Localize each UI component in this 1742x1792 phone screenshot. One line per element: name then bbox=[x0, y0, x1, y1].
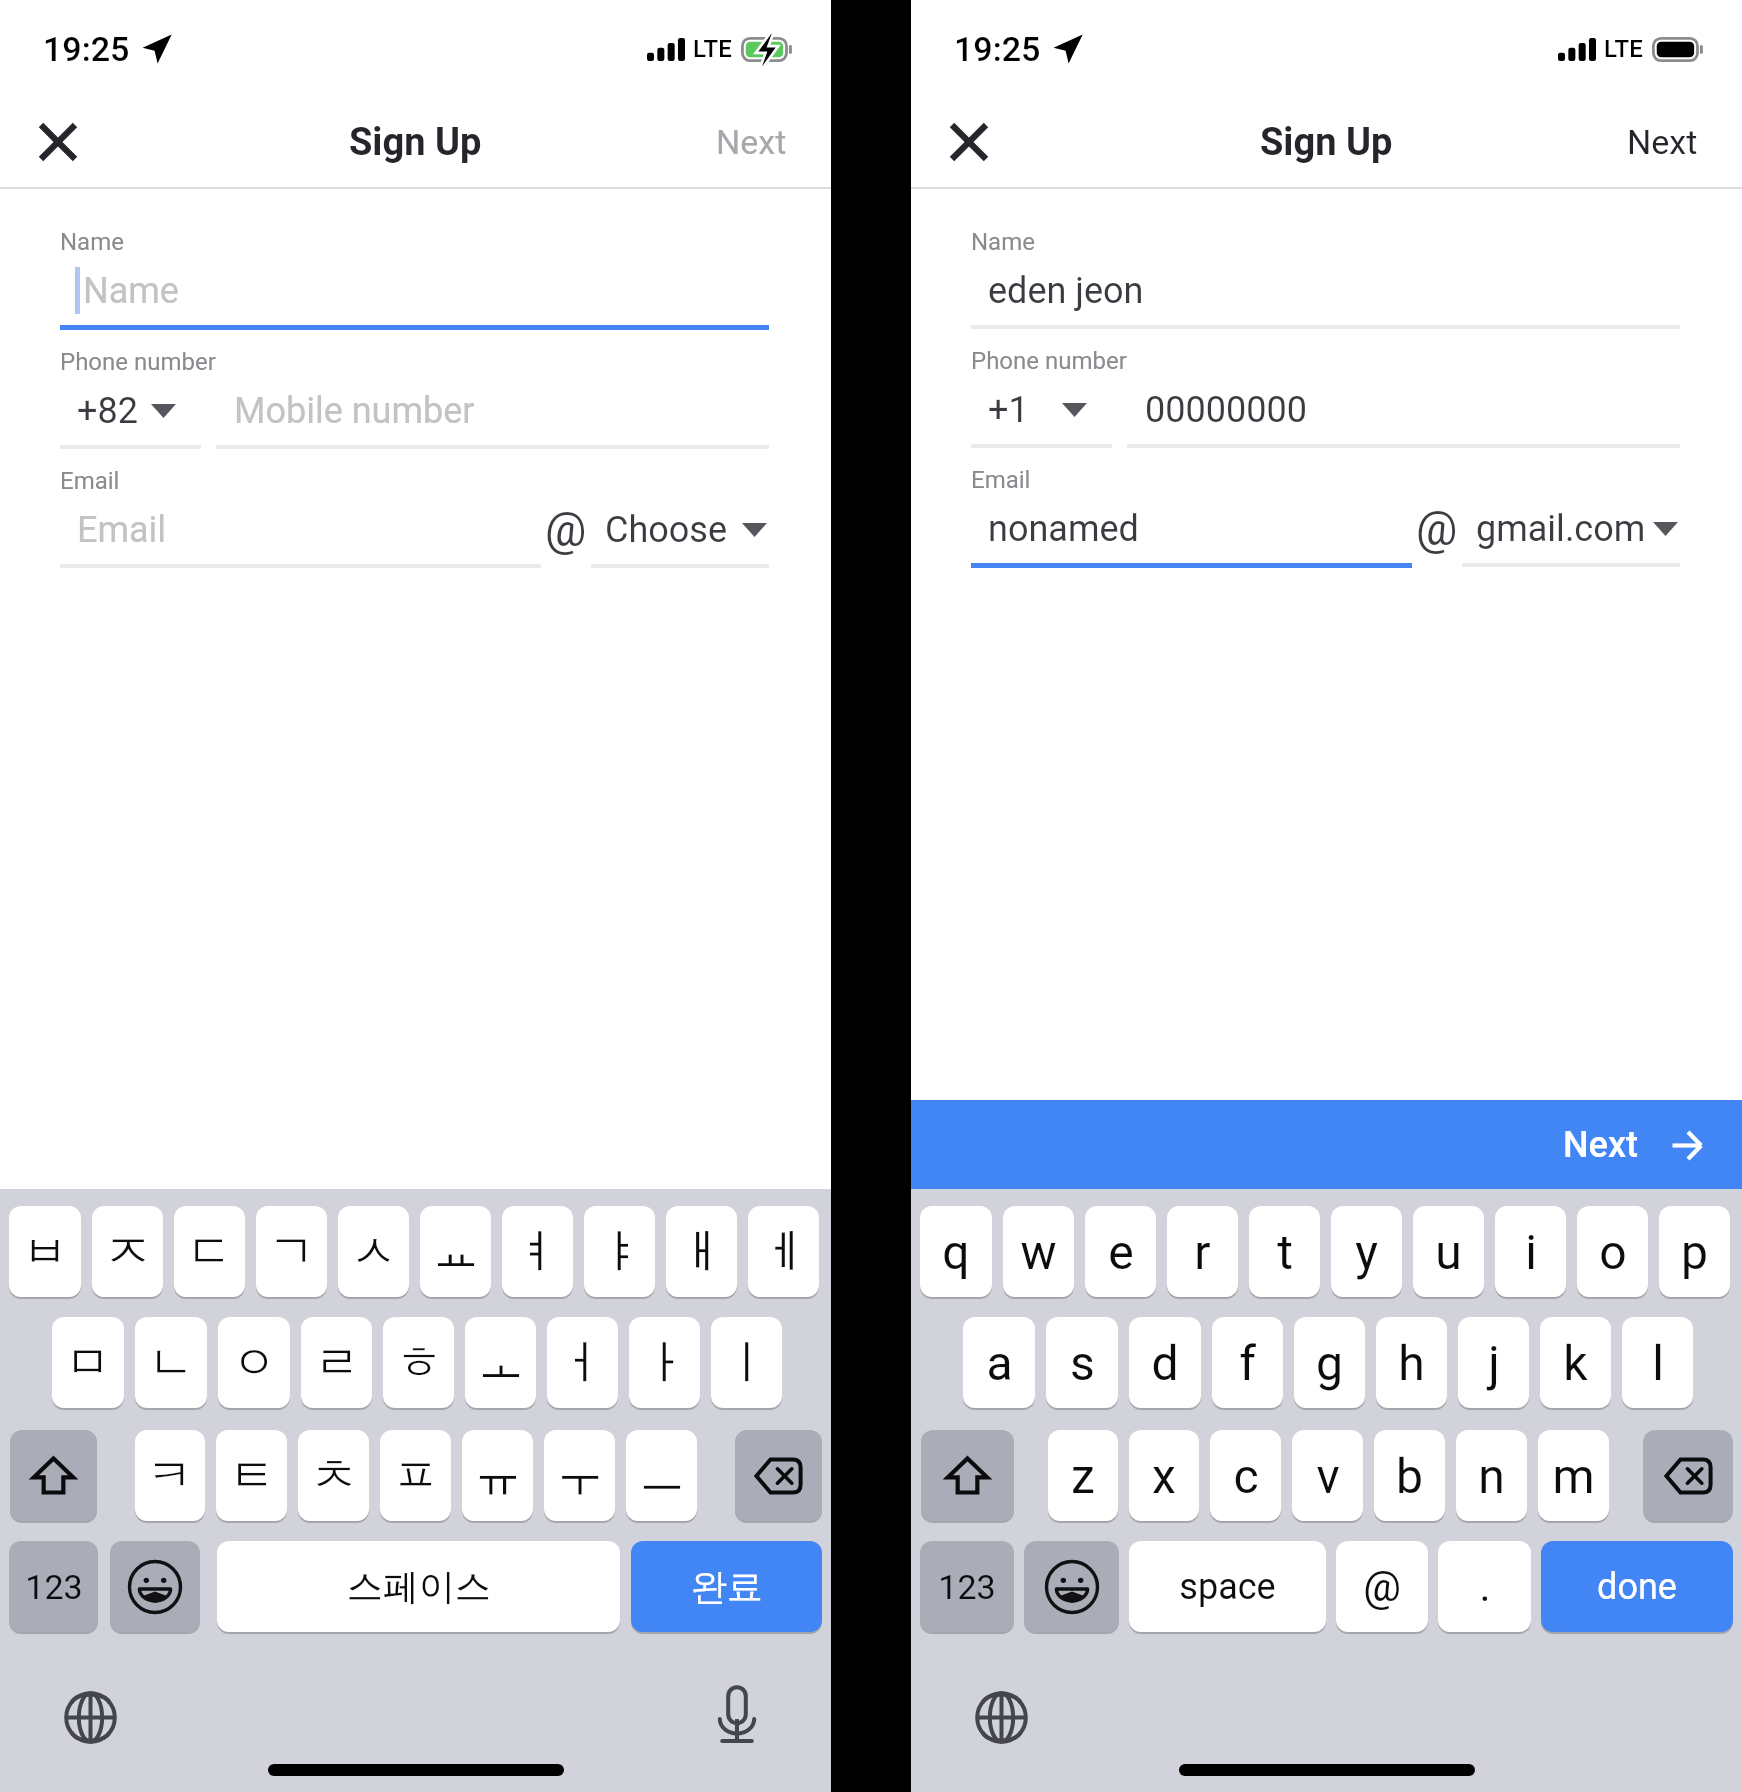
staticText: . bbox=[1479, 1562, 1491, 1611]
button[interactable]: g bbox=[1294, 1317, 1365, 1408]
button[interactable]: Email bbox=[60, 495, 541, 564]
button[interactable]: ㄴ bbox=[135, 1317, 207, 1408]
button[interactable]: e bbox=[1085, 1206, 1156, 1297]
staticText: 123 bbox=[938, 1567, 996, 1607]
button[interactable]: +82 bbox=[60, 376, 201, 445]
button[interactable]: ㅏ bbox=[629, 1317, 700, 1408]
staticText: ㅔ bbox=[761, 1223, 807, 1281]
button[interactable]: Change keyboard bbox=[55, 1682, 125, 1752]
button[interactable]: ㅍ bbox=[380, 1430, 451, 1521]
button[interactable]: 완료 bbox=[631, 1541, 822, 1632]
button[interactable]: ㅡ bbox=[626, 1430, 697, 1521]
staticText: Sign Up bbox=[1260, 120, 1393, 165]
button[interactable]: ㄷ bbox=[174, 1206, 245, 1297]
button[interactable]: ㅌ bbox=[216, 1430, 287, 1521]
staticText: Next bbox=[1627, 122, 1698, 162]
button[interactable]: Backspace bbox=[735, 1430, 822, 1521]
button[interactable]: f bbox=[1212, 1317, 1283, 1408]
button[interactable]: ㅎ bbox=[383, 1317, 454, 1408]
button[interactable]: v bbox=[1292, 1430, 1363, 1521]
button[interactable]: ㅁ bbox=[52, 1317, 124, 1408]
button[interactable]: ㅜ bbox=[544, 1430, 615, 1521]
staticText: eden jeon bbox=[988, 270, 1144, 312]
button[interactable]: t bbox=[1249, 1206, 1320, 1297]
button[interactable]: ㅑ bbox=[584, 1206, 655, 1297]
button[interactable]: 00000000 bbox=[1127, 375, 1680, 444]
button[interactable]: 123 bbox=[9, 1541, 98, 1632]
button[interactable]: x bbox=[1129, 1430, 1199, 1521]
button[interactable]: ㅊ bbox=[298, 1430, 369, 1521]
button[interactable]: ㅂ bbox=[9, 1206, 81, 1297]
staticText: y bbox=[1355, 1224, 1378, 1280]
button[interactable]: +1 bbox=[971, 375, 1112, 444]
button[interactable]: done bbox=[1541, 1541, 1733, 1632]
button[interactable]: ㅛ bbox=[420, 1206, 491, 1297]
button[interactable]: i bbox=[1495, 1206, 1566, 1297]
button[interactable]: Backspace bbox=[1643, 1430, 1733, 1521]
button[interactable]: r bbox=[1167, 1206, 1238, 1297]
button[interactable]: ㅔ bbox=[748, 1206, 819, 1297]
staticText: u bbox=[1435, 1224, 1462, 1280]
button[interactable]: h bbox=[1376, 1317, 1447, 1408]
button[interactable]: j bbox=[1458, 1317, 1529, 1408]
button[interactable]: ㄱ bbox=[256, 1206, 327, 1297]
button[interactable]: ㅓ bbox=[547, 1317, 618, 1408]
button[interactable]: d bbox=[1129, 1317, 1201, 1408]
button[interactable]: Next bbox=[911, 1100, 1742, 1189]
button[interactable]: ㅠ bbox=[462, 1430, 533, 1521]
button[interactable]: 스페이스 bbox=[217, 1541, 620, 1632]
staticText: ㄹ bbox=[314, 1334, 360, 1392]
button[interactable]: ㅐ bbox=[666, 1206, 737, 1297]
button[interactable]: Name bbox=[60, 256, 769, 325]
button[interactable]: Choose bbox=[591, 495, 769, 564]
button[interactable]: Dictate bbox=[702, 1680, 772, 1750]
button[interactable]: Next bbox=[716, 97, 787, 187]
button[interactable]: z bbox=[1048, 1430, 1118, 1521]
button[interactable]: Close bbox=[22, 106, 94, 178]
button[interactable]: Change keyboard bbox=[966, 1682, 1036, 1752]
button[interactable]: u bbox=[1413, 1206, 1484, 1297]
button[interactable]: ㅋ bbox=[135, 1430, 205, 1521]
button[interactable]: ㅣ bbox=[711, 1317, 782, 1408]
button[interactable]: Close bbox=[933, 106, 1005, 178]
button[interactable]: eden jeon bbox=[971, 256, 1680, 325]
button[interactable]: Emoji bbox=[1024, 1541, 1119, 1632]
button[interactable]: s bbox=[1046, 1317, 1118, 1408]
staticText: ㅂ bbox=[22, 1223, 68, 1281]
staticText: q bbox=[942, 1224, 970, 1280]
button[interactable]: p bbox=[1659, 1206, 1730, 1297]
button[interactable]: Mobile number bbox=[216, 376, 769, 445]
button[interactable]: Emoji bbox=[110, 1541, 200, 1632]
staticText: i bbox=[1525, 1224, 1537, 1280]
staticText: ㄱ bbox=[269, 1223, 315, 1281]
button[interactable]: ㅕ bbox=[502, 1206, 573, 1297]
button[interactable]: k bbox=[1540, 1317, 1611, 1408]
button[interactable]: c bbox=[1210, 1430, 1281, 1521]
button[interactable]: 123 bbox=[920, 1541, 1014, 1632]
button[interactable]: nonamed bbox=[971, 494, 1412, 563]
button[interactable]: space bbox=[1129, 1541, 1326, 1632]
button[interactable]: w bbox=[1003, 1206, 1074, 1297]
staticText: 19:25 bbox=[43, 29, 130, 69]
staticText: ㅓ bbox=[560, 1334, 606, 1392]
button[interactable]: n bbox=[1456, 1430, 1527, 1521]
button[interactable]: ㅇ bbox=[218, 1317, 290, 1408]
button[interactable]: Shift bbox=[921, 1430, 1014, 1521]
button[interactable]: b bbox=[1374, 1430, 1445, 1521]
staticText: @ bbox=[1363, 1562, 1401, 1611]
button[interactable]: l bbox=[1622, 1317, 1693, 1408]
button[interactable]: ㅅ bbox=[338, 1206, 409, 1297]
button[interactable]: Shift bbox=[10, 1430, 97, 1521]
button[interactable]: . bbox=[1438, 1541, 1531, 1632]
button[interactable]: ㅈ bbox=[92, 1206, 163, 1297]
button[interactable]: gmail.com bbox=[1462, 494, 1680, 563]
button[interactable]: m bbox=[1538, 1430, 1609, 1521]
button[interactable]: ㄹ bbox=[301, 1317, 372, 1408]
button[interactable]: q bbox=[920, 1206, 992, 1297]
button[interactable]: @ bbox=[1336, 1541, 1428, 1632]
button[interactable]: y bbox=[1331, 1206, 1402, 1297]
button[interactable]: Next bbox=[1627, 97, 1698, 187]
button[interactable]: o bbox=[1577, 1206, 1648, 1297]
button[interactable]: ㅗ bbox=[465, 1317, 536, 1408]
button[interactable]: a bbox=[963, 1317, 1035, 1408]
